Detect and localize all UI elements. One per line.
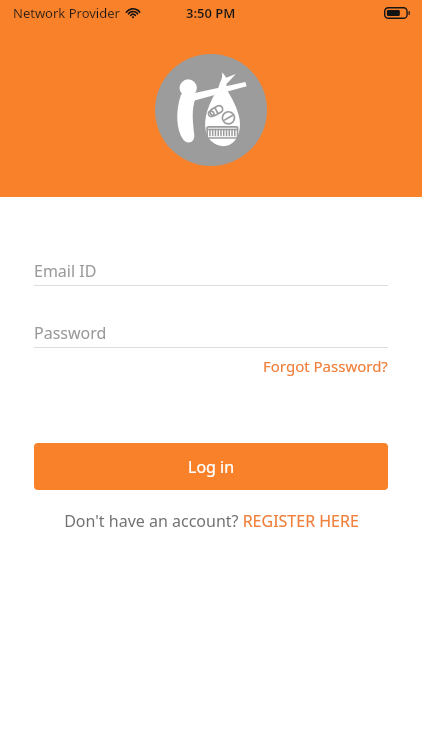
staticText: Log in <box>188 456 235 478</box>
button[interactable]: Email ID <box>34 256 388 286</box>
button[interactable]: Forgot Password? <box>263 353 388 379</box>
staticText: 3:50 PM <box>186 4 236 22</box>
other: Wi-Fi <box>126 6 140 20</box>
button[interactable]: Log in <box>34 443 388 490</box>
staticText: Network Provider <box>13 4 120 22</box>
staticText: Password <box>34 322 107 344</box>
other: Battery <box>384 7 411 19</box>
button[interactable]: Password <box>34 318 388 348</box>
button[interactable]: Don't have an account? REGISTER HERE <box>0 506 422 536</box>
staticText: Email ID <box>34 260 97 282</box>
staticText: Forgot Password? <box>263 356 388 376</box>
staticText: Don't have an account? REGISTER HERE <box>64 510 359 532</box>
